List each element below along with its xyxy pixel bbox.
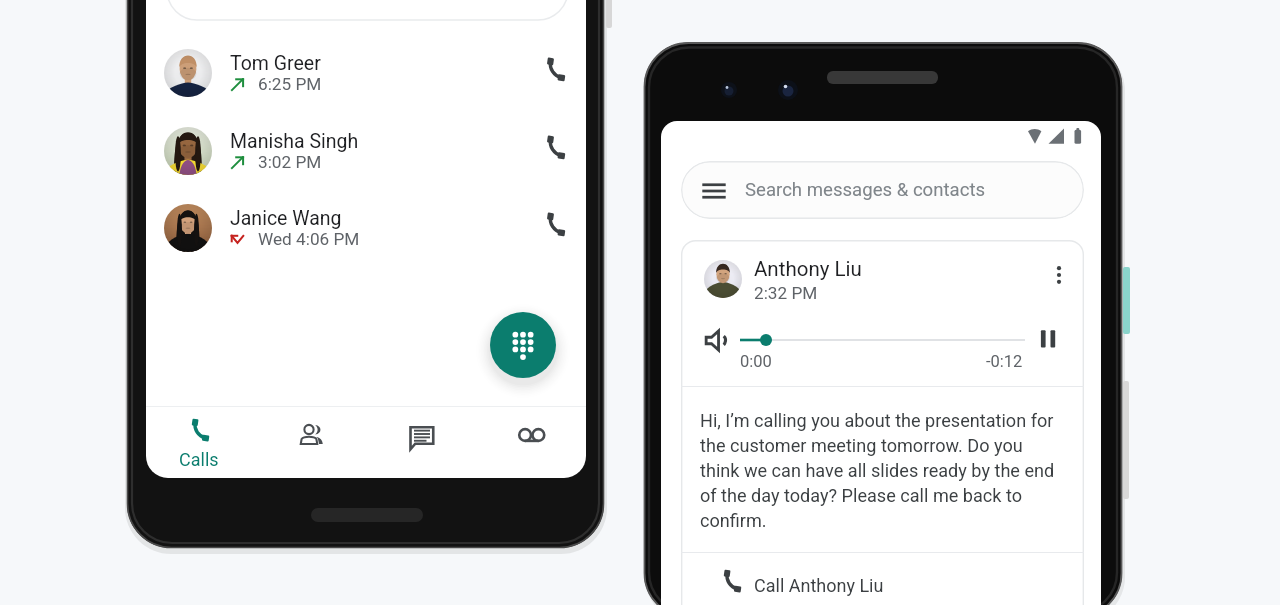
staticText: Search messages & contacts xyxy=(745,179,986,201)
button[interactable]: Call Tom Greer xyxy=(533,54,573,94)
staticText: 6:25 PM xyxy=(258,74,322,94)
button[interactable]: Pause xyxy=(1032,323,1064,355)
staticText: Janice Wang xyxy=(230,207,342,230)
staticText: Hi, I’m calling you about the presentati… xyxy=(700,410,1060,531)
button[interactable]: Manisha Singh xyxy=(146,126,586,204)
staticText: Anthony Liu xyxy=(754,257,862,281)
staticText: Call Anthony Liu xyxy=(754,575,884,596)
button[interactable]: Call Janice Wang xyxy=(533,209,573,249)
button[interactable]: Calls xyxy=(146,407,256,476)
staticText: 2:32 PM xyxy=(754,283,818,303)
button[interactable]: Call Manisha Singh xyxy=(533,132,573,172)
staticText: 3:02 PM xyxy=(258,152,322,172)
button[interactable]: Janice Wang xyxy=(146,203,586,281)
staticText: 0:00 xyxy=(740,352,772,371)
button[interactable]: Search messages & contacts xyxy=(681,161,1084,219)
button[interactable]: Open navigation menu xyxy=(693,170,735,212)
button[interactable]: Contacts xyxy=(256,407,366,476)
button[interactable]: More options xyxy=(1042,258,1076,292)
staticText: Calls xyxy=(179,449,219,470)
button[interactable]: Messages xyxy=(366,407,476,476)
button[interactable]: Tom Greer xyxy=(146,48,586,126)
staticText: Wed 4:06 PM xyxy=(258,229,360,249)
button[interactable]: Dialpad xyxy=(490,312,556,378)
button[interactable] xyxy=(681,553,1084,605)
staticText: Manisha Singh xyxy=(230,130,359,153)
staticText: -0:12 xyxy=(986,352,1023,371)
button[interactable]: Volume xyxy=(699,324,731,356)
staticText: Tom Greer xyxy=(230,52,321,75)
button[interactable]: Voicemail xyxy=(476,407,586,476)
